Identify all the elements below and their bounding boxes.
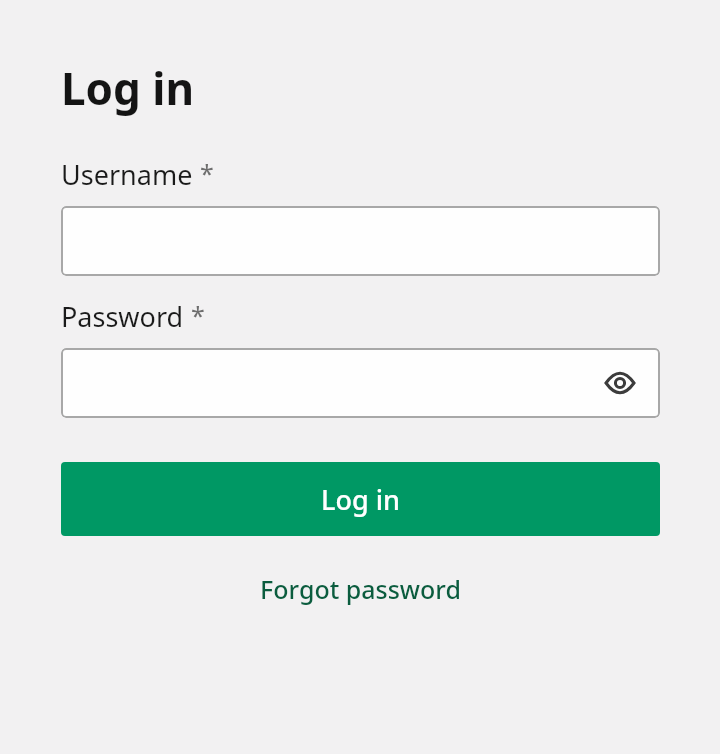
staticText: * — [191, 298, 205, 332]
button[interactable]: Log in — [61, 462, 660, 536]
button[interactable] — [61, 206, 660, 276]
button[interactable]: Show password — [602, 365, 638, 401]
staticText: * — [200, 156, 214, 190]
button[interactable]: Forgot password — [61, 572, 660, 606]
staticText: Password — [61, 298, 184, 335]
staticText: Username — [61, 156, 193, 193]
staticText: Forgot password — [260, 572, 461, 606]
button[interactable]: Show password — [61, 348, 660, 418]
staticText: Log in — [321, 481, 400, 518]
staticText: Log in — [61, 58, 195, 118]
